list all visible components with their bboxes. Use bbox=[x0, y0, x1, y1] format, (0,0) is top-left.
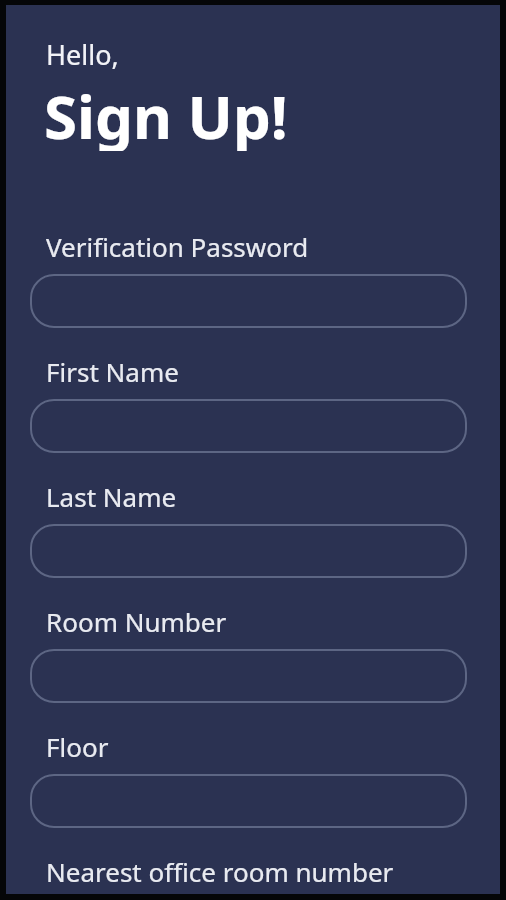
staticText: Hello, bbox=[46, 36, 119, 73]
staticText: Floor bbox=[46, 729, 109, 764]
staticText: Room Number bbox=[46, 604, 227, 639]
staticText: Last Name bbox=[46, 479, 177, 514]
staticText: Verification Password bbox=[46, 229, 309, 264]
staticText: First Name bbox=[46, 354, 179, 389]
button[interactable] bbox=[30, 274, 467, 328]
button[interactable] bbox=[30, 399, 467, 453]
staticText: Sign Up! bbox=[44, 75, 288, 151]
button[interactable] bbox=[30, 649, 467, 703]
staticText: Nearest office room number bbox=[46, 854, 394, 889]
button[interactable] bbox=[30, 774, 467, 828]
button[interactable] bbox=[30, 524, 467, 578]
